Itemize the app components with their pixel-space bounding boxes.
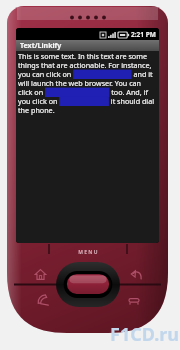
staticText: This is some text. In this text are some… [18,51,157,115]
button[interactable]: Trackball [56,262,120,307]
button[interactable]: End call [123,289,145,311]
staticText: F1CD.ru [110,322,179,347]
staticText: 2:21 PM [131,30,156,39]
button[interactable]: Home [29,263,51,285]
button[interactable]: MENU [53,246,123,258]
staticText: Text/Linkify [20,41,62,51]
staticText: MENU [78,249,99,256]
button[interactable]: Back [125,263,147,285]
button[interactable]: Call [32,289,54,311]
button[interactable]: This is some text. In this text are some… [18,51,157,243]
